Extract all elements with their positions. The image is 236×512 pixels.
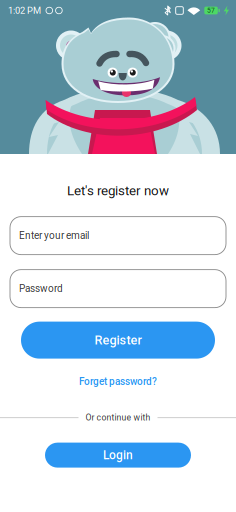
staticText: Enter your email xyxy=(19,230,89,241)
button[interactable]: Forget password? xyxy=(79,376,157,388)
staticText: Password xyxy=(19,283,63,294)
staticText: Forget password? xyxy=(79,376,157,387)
staticText: Register xyxy=(94,333,141,347)
button[interactable]: Login xyxy=(45,443,191,468)
staticText: Or continue with xyxy=(85,412,150,423)
staticText: 57 xyxy=(207,7,215,14)
staticText: Let's register now xyxy=(67,183,169,199)
staticText: 1:02 PM xyxy=(8,5,41,16)
button[interactable]: Register xyxy=(21,322,215,359)
staticText: Login xyxy=(103,448,133,462)
